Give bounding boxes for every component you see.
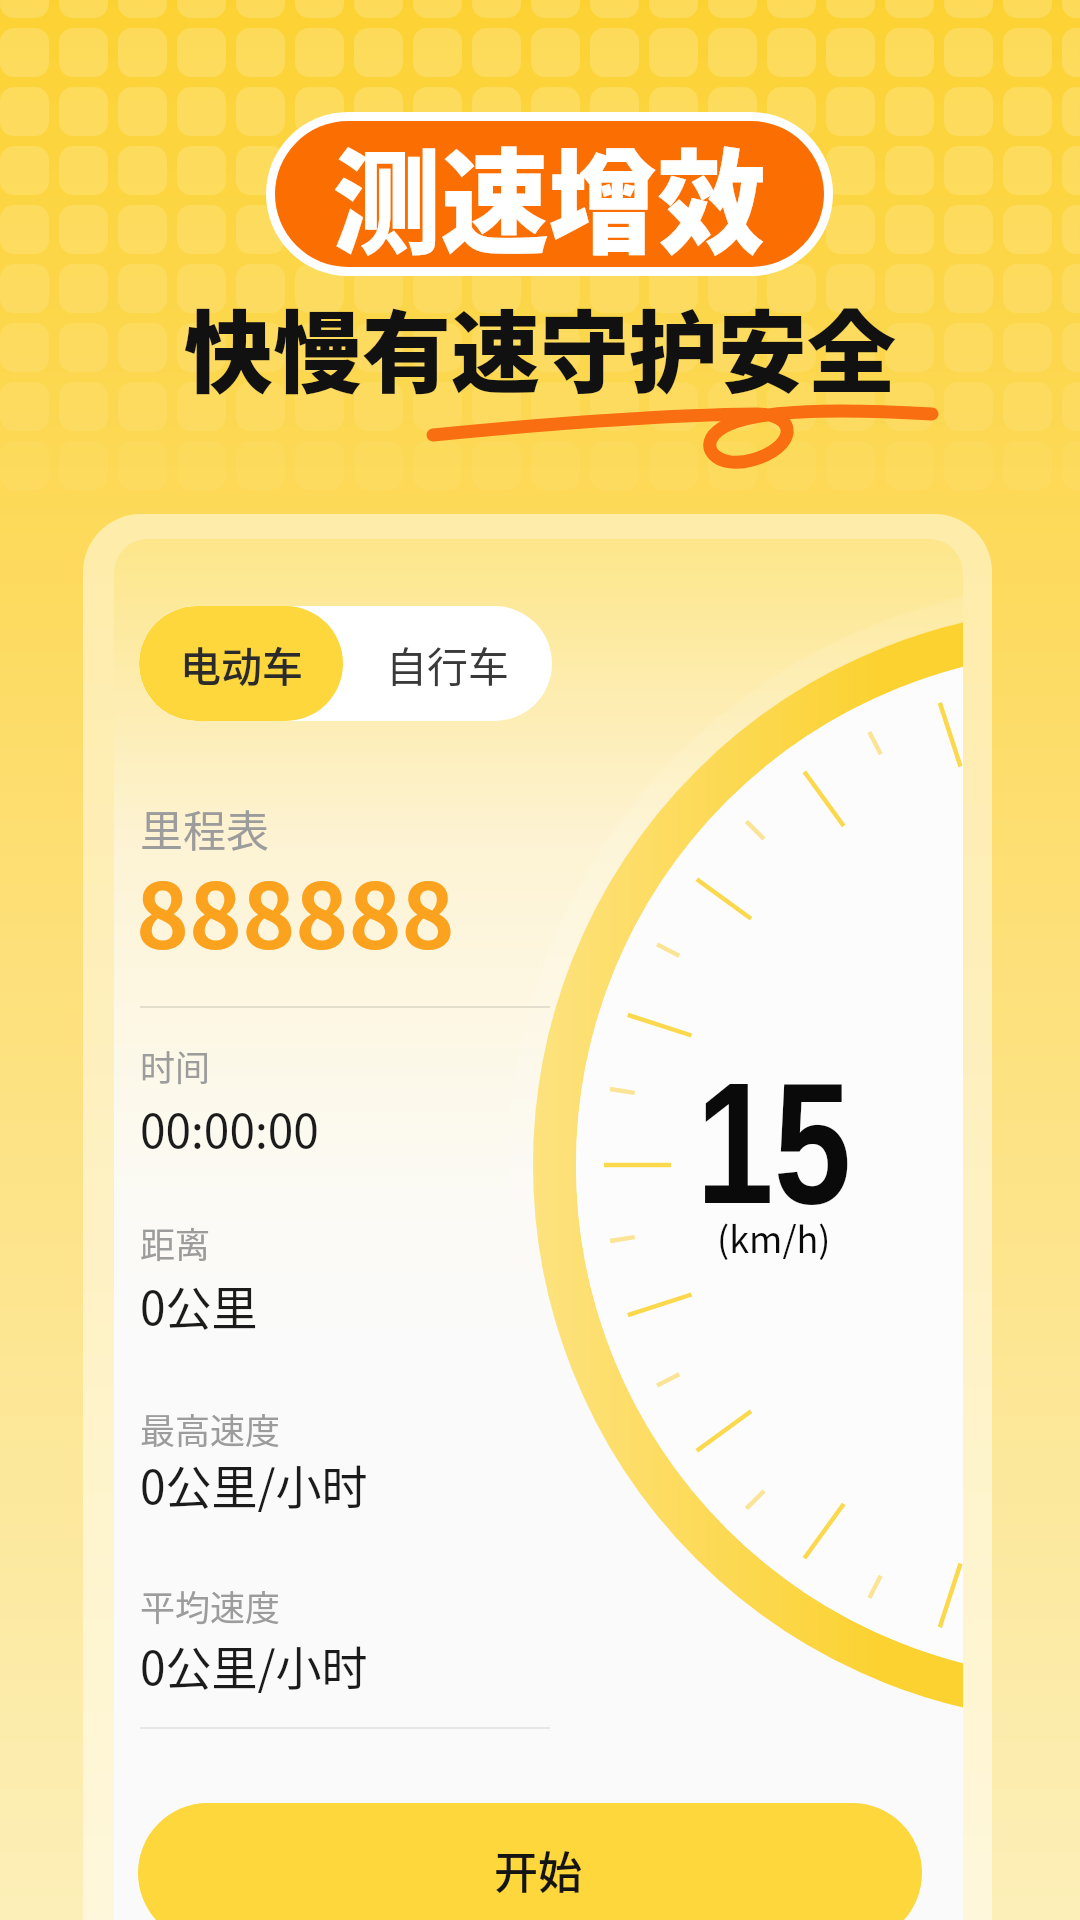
staticText: 开始 xyxy=(494,1838,582,1902)
staticText: 最高速度 xyxy=(140,1403,281,1454)
staticText: 0公里 xyxy=(140,1272,258,1339)
staticText: 888888 xyxy=(136,845,455,975)
button[interactable]: 测速增效 xyxy=(275,121,824,267)
staticText: 0公里/小时 xyxy=(140,1451,368,1518)
staticText: 平均速度 xyxy=(140,1580,281,1631)
staticText: 测速增效 xyxy=(332,121,767,258)
button[interactable]: 开始 xyxy=(138,1803,922,1920)
button[interactable]: 自行车 xyxy=(343,606,552,721)
staticText: 15 xyxy=(696,1047,852,1239)
button[interactable]: 电动车 xyxy=(139,606,343,721)
staticText: 距离 xyxy=(140,1217,211,1268)
staticText: (km/h) xyxy=(717,1211,831,1263)
staticText: 0公里/小时 xyxy=(140,1632,368,1699)
staticText: 自行车 xyxy=(386,634,509,693)
staticText: 快慢有速守护安全 xyxy=(184,282,896,411)
staticText: 里程表 xyxy=(140,797,269,859)
staticText: 电动车 xyxy=(180,634,303,693)
staticText: 时间 xyxy=(140,1040,211,1091)
staticText: 00:00:00 xyxy=(140,1095,319,1162)
